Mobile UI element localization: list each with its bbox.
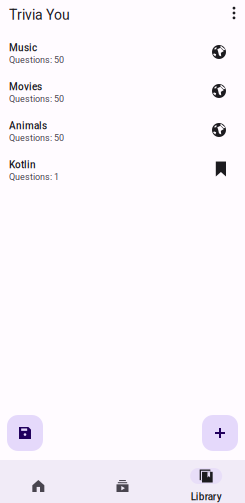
button[interactable]: Movies — [82, 460, 163, 503]
staticText: Library — [191, 491, 222, 503]
staticText: Movies — [9, 81, 42, 93]
button[interactable]: Save — [7, 415, 43, 451]
button[interactable]: Animals — [0, 112, 245, 151]
staticText: Kotlin — [9, 159, 36, 171]
button[interactable]: Kotlin — [0, 151, 245, 190]
staticText: Music — [9, 42, 37, 54]
button[interactable]: Movies — [0, 73, 245, 112]
staticText: Questions: 50 — [9, 133, 64, 143]
staticText: Questions: 1 — [9, 172, 59, 182]
button[interactable]: Add quiz — [202, 415, 238, 451]
staticText: Trivia You — [9, 7, 70, 23]
staticText: Animals — [9, 120, 47, 132]
button[interactable]: More options — [223, 1, 245, 25]
button[interactable]: Library — [165, 460, 245, 503]
button[interactable]: Home — [0, 460, 79, 503]
staticText: Questions: 50 — [9, 94, 64, 104]
staticText: Questions: 50 — [9, 55, 64, 65]
button[interactable]: Music — [0, 34, 245, 73]
